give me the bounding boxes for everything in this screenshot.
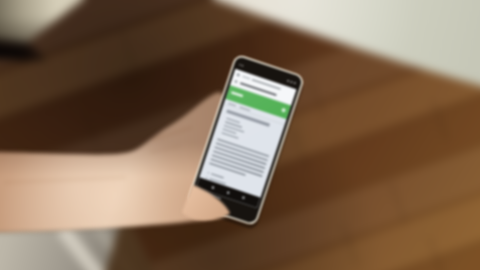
button[interactable]: Phone showing Android Security Bulletin (0, 0, 480, 270)
